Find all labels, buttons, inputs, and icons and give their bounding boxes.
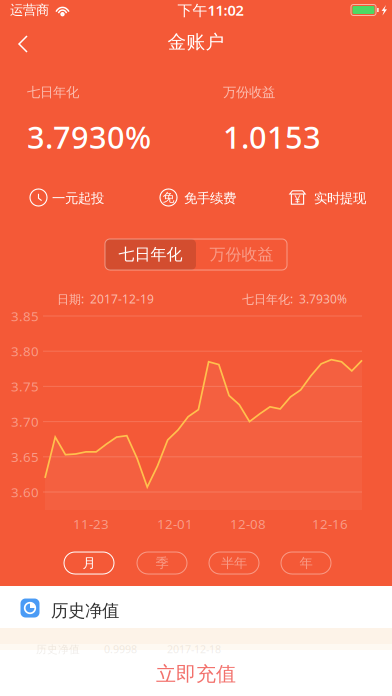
staticText: 下午11:02 bbox=[177, 0, 243, 20]
staticText: 3.65 bbox=[11, 448, 39, 466]
staticText: 月 bbox=[82, 555, 95, 571]
button[interactable]: 立即充值 bbox=[0, 659, 392, 689]
staticText: 立即充值 bbox=[156, 662, 236, 686]
staticText: 12-01 bbox=[157, 515, 193, 533]
staticText: 七日年化: 3.7930% bbox=[242, 291, 347, 307]
staticText: 万份收益 bbox=[209, 245, 273, 264]
staticText: 1.0153 bbox=[223, 116, 321, 157]
button[interactable]: 半年 bbox=[209, 552, 259, 574]
staticText: 季 bbox=[155, 555, 168, 571]
staticText: 历史净值 0.9998 2017-12-18 bbox=[36, 642, 221, 656]
staticText: 日期: 2017-12-19 bbox=[57, 291, 154, 307]
button[interactable]: Back bbox=[0, 20, 44, 64]
staticText: 历史净值 bbox=[51, 600, 119, 621]
button[interactable]: 七日年化 bbox=[105, 239, 196, 270]
staticText: 七日年化 bbox=[118, 245, 182, 264]
staticText: 3.85 bbox=[11, 307, 39, 325]
staticText: 免 bbox=[162, 190, 174, 205]
button[interactable]: 月 bbox=[64, 552, 114, 574]
staticText: 3.60 bbox=[11, 483, 39, 501]
staticText: ¥ bbox=[294, 192, 300, 206]
staticText: 3.7930% bbox=[27, 116, 151, 157]
staticText: 七日年化 bbox=[27, 84, 79, 100]
staticText: 3.70 bbox=[11, 413, 39, 430]
button[interactable]: 万份收益 bbox=[196, 239, 287, 270]
staticText: 12-16 bbox=[312, 515, 348, 533]
staticText: 11-23 bbox=[73, 515, 109, 533]
button[interactable]: 季 bbox=[137, 552, 187, 574]
staticText: 半年 bbox=[221, 555, 247, 571]
staticText: 运营商 bbox=[10, 2, 49, 18]
staticText: 12-08 bbox=[230, 515, 266, 533]
staticText: 免手续费 bbox=[184, 190, 236, 206]
button[interactable]: 年 bbox=[281, 552, 331, 574]
staticText: 金账户 bbox=[167, 30, 224, 53]
staticText: 3.75 bbox=[11, 377, 39, 395]
staticText: 万份收益 bbox=[223, 84, 275, 100]
staticText: 一元起投 bbox=[52, 190, 104, 206]
staticText: 年 bbox=[299, 555, 312, 571]
staticText: 3.80 bbox=[11, 342, 39, 360]
staticText: 实时提现 bbox=[314, 190, 366, 206]
button[interactable]: 历史净值 bbox=[0, 586, 392, 628]
